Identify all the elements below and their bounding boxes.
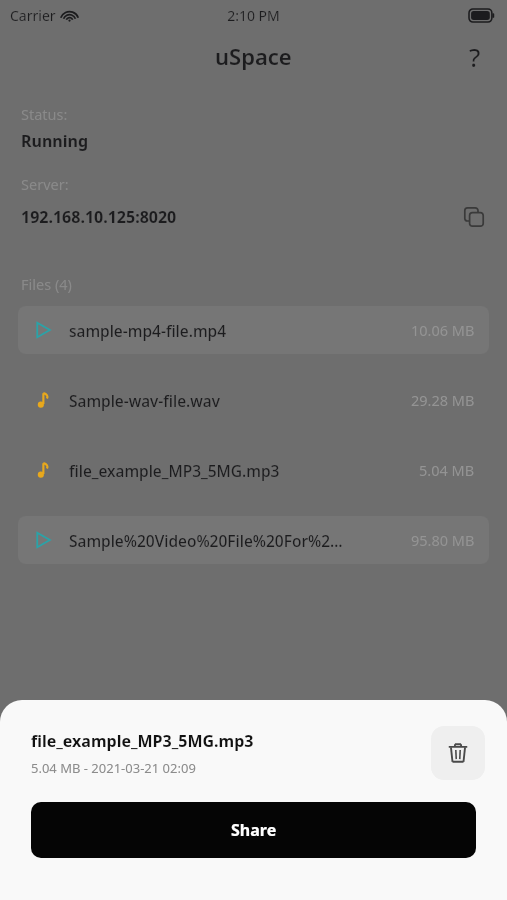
staticText: uSpace — [215, 41, 292, 71]
staticText: Running — [21, 130, 88, 152]
staticText: Carrier — [10, 6, 56, 25]
staticText: 95.80 MB — [411, 530, 475, 550]
staticText: 5.04 MB - 2021-03-21 02:09 — [31, 759, 196, 777]
button[interactable]: Delete — [431, 726, 485, 780]
staticText: file_example_MP3_5MG.mp3 — [69, 460, 280, 481]
staticText: 5.04 MB — [419, 460, 475, 480]
button[interactable]: Sample%20Video%20File%20For%2… — [18, 516, 489, 564]
button[interactable]: sample-mp4-file.mp4 — [18, 306, 489, 354]
staticText: Sample-wav-file.wav — [69, 390, 220, 411]
button[interactable]: Sample-wav-file.wav — [18, 376, 489, 424]
staticText: 10.06 MB — [411, 320, 475, 340]
staticText: 2:10 PM — [227, 6, 280, 25]
button[interactable]: Share — [31, 802, 476, 858]
staticText: Share — [231, 819, 277, 841]
staticText: Sample%20Video%20File%20For%2… — [69, 530, 343, 551]
staticText: sample-mp4-file.mp4 — [69, 320, 227, 341]
staticText: ? — [469, 39, 481, 74]
staticText: Files (4) — [21, 274, 72, 294]
staticText: Status: — [21, 104, 68, 124]
button[interactable]: Copy server address — [455, 198, 493, 236]
staticText: 29.28 MB — [411, 390, 475, 410]
staticText: file_example_MP3_5MG.mp3 — [31, 730, 254, 752]
button[interactable]: Help — [453, 34, 497, 78]
staticText: Server: — [21, 174, 69, 194]
staticText: 192.168.10.125:8020 — [21, 206, 177, 228]
button[interactable]: file_example_MP3_5MG.mp3 — [18, 446, 489, 494]
